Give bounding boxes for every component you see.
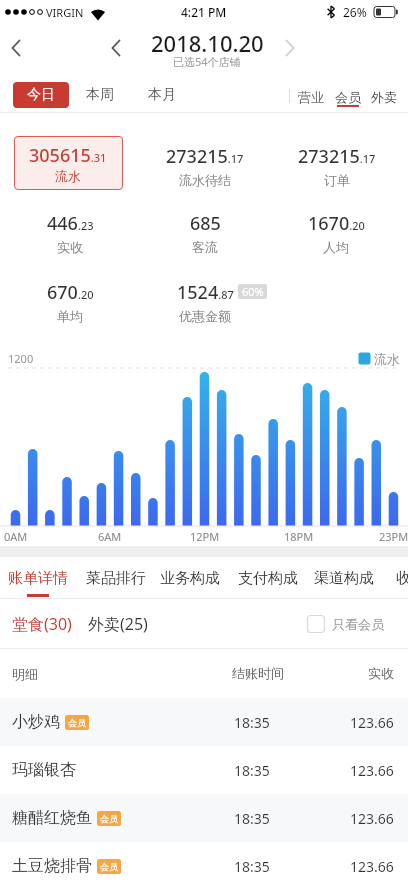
- staticText: 收银员: [396, 569, 408, 588]
- staticText: 已选54个店铺: [173, 54, 241, 68]
- button[interactable]: 收银员: [396, 561, 408, 595]
- staticText: 123.66: [350, 857, 394, 876]
- staticText: 营业: [298, 89, 324, 105]
- button[interactable]: 堂食(30): [12, 604, 82, 644]
- staticText: 土豆烧排骨: [12, 856, 92, 876]
- button[interactable]: 会员: [328, 84, 368, 109]
- staticText: 实收: [57, 239, 83, 255]
- staticText: 123.66: [350, 713, 394, 732]
- staticText: 流水: [55, 168, 81, 184]
- staticText: 6AM: [98, 529, 122, 543]
- staticText: 小炒鸡: [12, 712, 60, 732]
- staticText: 18PM: [284, 529, 314, 543]
- staticText: 会员: [68, 717, 86, 728]
- button[interactable]: 菜品排行: [86, 561, 146, 595]
- staticText: 2018.10.20: [151, 28, 264, 55]
- staticText: 273215.17: [298, 144, 376, 166]
- staticText: 玛瑙银杏: [12, 760, 76, 780]
- staticText: 人均: [323, 239, 349, 255]
- staticText: 18:35: [234, 857, 270, 876]
- staticText: 明细: [12, 666, 38, 682]
- staticText: 糖醋红烧鱼: [12, 808, 92, 828]
- staticText: 685: [190, 211, 221, 233]
- staticText: 实收: [368, 665, 394, 681]
- staticText: 只看会员: [332, 616, 384, 632]
- staticText: 0AM: [4, 529, 28, 543]
- staticText: 订单: [324, 172, 350, 188]
- button[interactable]: 本周: [75, 82, 125, 108]
- button[interactable]: 玛瑙银杏: [0, 746, 408, 794]
- staticText: 支付构成: [238, 569, 298, 588]
- staticText: 18:35: [234, 713, 270, 732]
- staticText: 1524.87: [177, 280, 234, 302]
- button[interactable]: 小炒鸡: [0, 698, 408, 746]
- staticText: 12PM: [190, 529, 220, 543]
- button[interactable]: 今日: [13, 82, 69, 108]
- staticText: 客流: [192, 239, 218, 255]
- staticText: 今日: [27, 86, 55, 104]
- button[interactable]: 土豆烧排骨: [0, 842, 408, 883]
- button[interactable]: 营业: [291, 84, 331, 109]
- staticText: 18:35: [234, 761, 270, 780]
- staticText: 堂食(30): [12, 613, 72, 635]
- staticText: 23PM: [379, 529, 408, 543]
- button[interactable]: 账单详情: [8, 561, 68, 595]
- staticText: 外卖: [371, 89, 397, 105]
- button[interactable]: 糖醋红烧鱼: [0, 794, 408, 842]
- button[interactable]: 只看会员: [307, 607, 384, 641]
- staticText: 60%: [242, 284, 264, 299]
- staticText: 273215.17: [166, 144, 244, 166]
- staticText: 18:35: [234, 809, 270, 828]
- staticText: 渠道构成: [314, 569, 374, 588]
- staticText: 会员: [100, 861, 118, 872]
- staticText: 本月: [148, 86, 176, 104]
- staticText: 菜品排行: [86, 569, 146, 588]
- button[interactable]: 支付构成: [238, 561, 298, 595]
- button[interactable]: 外卖: [364, 84, 404, 109]
- staticText: 账单详情: [8, 569, 68, 588]
- button[interactable]: 本月: [137, 82, 187, 108]
- staticText: 优惠金额: [179, 308, 231, 324]
- staticText: 1670.20: [308, 211, 365, 233]
- button[interactable]: 外卖(25): [88, 604, 158, 644]
- staticText: 305615.31: [29, 143, 107, 165]
- staticText: VIRGIN: [46, 5, 84, 20]
- staticText: 流水待结: [179, 172, 231, 188]
- button[interactable]: 渠道构成: [314, 561, 374, 595]
- staticText: 1200: [8, 351, 34, 365]
- staticText: 单均: [57, 308, 83, 324]
- staticText: 会员: [335, 89, 361, 105]
- staticText: 业务构成: [160, 569, 220, 588]
- staticText: 4:21 PM: [181, 4, 227, 20]
- staticText: 446.23: [47, 211, 94, 233]
- button[interactable]: 业务构成: [160, 561, 220, 595]
- staticText: 流水: [374, 351, 400, 367]
- staticText: 结账时间: [232, 665, 284, 681]
- staticText: 123.66: [350, 761, 394, 780]
- staticText: 本周: [86, 86, 114, 104]
- staticText: 外卖(25): [88, 613, 148, 635]
- staticText: 123.66: [350, 809, 394, 828]
- staticText: 会员: [100, 813, 118, 824]
- button[interactable]: [14, 136, 123, 190]
- staticText: 670.20: [47, 280, 94, 302]
- staticText: 26%: [343, 4, 367, 20]
- button[interactable]: [0, 24, 408, 78]
